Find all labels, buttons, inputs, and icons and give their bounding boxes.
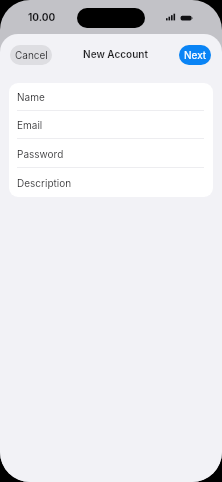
staticText: Cancel bbox=[15, 49, 48, 61]
staticText: Description bbox=[17, 177, 72, 189]
button[interactable]: Description bbox=[9, 168, 213, 197]
button[interactable]: Email bbox=[9, 111, 213, 139]
staticText: New Account bbox=[83, 48, 148, 60]
staticText: Name bbox=[17, 91, 45, 103]
staticText: 10.00 bbox=[28, 11, 56, 23]
button[interactable]: Cancel bbox=[10, 45, 52, 65]
button[interactable]: Name bbox=[9, 83, 213, 111]
button[interactable]: Password bbox=[9, 139, 213, 168]
staticText: Password bbox=[17, 148, 64, 160]
button[interactable]: Next bbox=[179, 45, 211, 65]
staticText: Next bbox=[184, 49, 207, 61]
staticText: Email bbox=[17, 119, 43, 131]
